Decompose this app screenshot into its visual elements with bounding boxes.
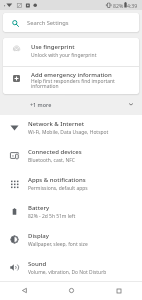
staticText: 82% - 2d 5h 51m left — [28, 213, 136, 220]
button[interactable]: +1 more — [0, 94, 142, 114]
staticText: Apps & notifications — [28, 176, 136, 184]
button[interactable]: Recents — [95, 281, 142, 300]
staticText: Add emergency information — [31, 71, 112, 79]
staticText: Battery — [28, 204, 136, 212]
button[interactable]: Search Settings — [3, 13, 139, 32]
staticText: 82% — [113, 2, 124, 9]
staticText: Help first responders find important inf… — [31, 78, 124, 90]
button[interactable]: Connected devices — [0, 143, 142, 171]
staticText: 4:39 — [127, 2, 138, 9]
button[interactable]: Use fingerprint — [3, 38, 139, 66]
staticText: Sound — [28, 260, 136, 268]
staticText: Bluetooth, cast, NFC — [28, 157, 136, 164]
staticText: Permissions, default apps — [28, 185, 136, 192]
staticText: +1 more — [30, 101, 52, 108]
staticText: Display — [28, 232, 136, 240]
button[interactable]: Apps & notifications — [0, 171, 142, 199]
staticText: Wallpaper, sleep, font size — [28, 241, 136, 248]
staticText: Search Settings — [27, 19, 69, 27]
button[interactable]: Network & Internet — [0, 115, 142, 143]
staticText: Unlock with your fingerprint — [31, 52, 97, 59]
button[interactable]: Sound — [0, 255, 142, 281]
staticText: Volume, vibration, Do Not Disturb — [28, 269, 136, 276]
staticText: Connected devices — [28, 148, 136, 156]
button[interactable]: Back — [0, 281, 48, 300]
button[interactable]: Add emergency information — [3, 66, 139, 94]
staticText: Network & Internet — [28, 120, 136, 128]
button[interactable]: Display — [0, 227, 142, 255]
staticText: Wi-Fi, Mobile, Data Usage, Hotspot — [28, 129, 136, 136]
button[interactable]: Battery — [0, 199, 142, 227]
button[interactable]: Home — [48, 281, 95, 300]
staticText: Use fingerprint — [31, 43, 75, 51]
